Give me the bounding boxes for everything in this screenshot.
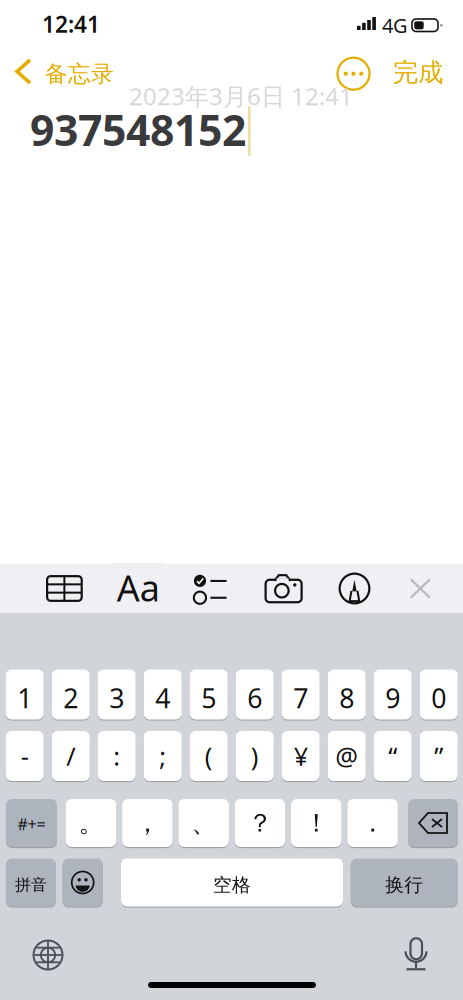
staticText: 2 — [63, 680, 78, 716]
button[interactable]: 4 — [144, 669, 182, 719]
button[interactable]: ， — [122, 799, 173, 847]
staticText: / — [66, 739, 75, 773]
staticText: 12:41 — [42, 9, 100, 39]
staticText: Aa — [117, 564, 160, 611]
staticText: 。 — [78, 807, 103, 838]
button[interactable]: Text formatting — [112, 563, 164, 612]
button[interactable]: Markup — [328, 564, 380, 613]
button[interactable]: Dictation — [394, 932, 438, 976]
staticText: 937548152 — [30, 101, 246, 158]
button[interactable]: 3 — [98, 669, 136, 719]
staticText: ( — [205, 739, 213, 773]
button[interactable]: 9 — [374, 669, 412, 719]
button[interactable]: #+= — [6, 799, 57, 847]
button[interactable]: 、 — [178, 799, 229, 847]
button[interactable]: 5 — [190, 669, 228, 719]
button[interactable]: ！ — [291, 799, 341, 847]
button[interactable]: 换行 — [351, 858, 458, 906]
staticText: ” — [434, 739, 443, 773]
button[interactable]: 7 — [282, 669, 320, 719]
button[interactable]: : — [98, 731, 136, 781]
staticText: 4 — [155, 680, 170, 716]
staticText: 5 — [201, 680, 216, 716]
staticText: ？ — [247, 807, 272, 838]
staticText: 4G — [382, 12, 408, 39]
button[interactable]: ． — [347, 799, 398, 847]
button[interactable]: ) — [236, 731, 274, 781]
staticText: 完成 — [393, 57, 443, 88]
staticText: ！ — [304, 807, 329, 838]
button[interactable]: 0 — [420, 669, 458, 719]
staticText: 2023年3月6日 12:41 — [129, 80, 353, 112]
button[interactable]: Hide keyboard — [394, 564, 446, 613]
staticText: - — [21, 739, 29, 773]
staticText: @ — [335, 739, 358, 773]
button[interactable]: Emoji — [63, 858, 103, 906]
button[interactable]: Checklist — [184, 564, 236, 613]
staticText: 1 — [17, 680, 32, 716]
staticText: 拼音 — [15, 875, 47, 895]
button[interactable]: “ — [374, 731, 412, 781]
button[interactable]: ¥ — [282, 731, 320, 781]
button[interactable]: 6 — [236, 669, 274, 719]
staticText: #+= — [17, 813, 45, 835]
staticText: 、 — [191, 807, 216, 838]
button[interactable]: 1 — [6, 669, 44, 719]
button[interactable]: - — [6, 731, 44, 781]
staticText: 8 — [339, 680, 354, 716]
staticText: ; — [159, 739, 166, 773]
button[interactable]: Delete — [408, 799, 458, 847]
button[interactable]: ; — [144, 731, 182, 781]
staticText: 6 — [247, 680, 262, 716]
staticText: 7 — [293, 680, 308, 716]
staticText: ． — [360, 807, 385, 838]
button[interactable]: ( — [190, 731, 228, 781]
staticText: ¥ — [294, 739, 308, 773]
staticText: 空格 — [213, 873, 251, 896]
staticText: 备忘录 — [45, 60, 114, 88]
staticText: 3 — [109, 680, 124, 716]
button[interactable]: 8 — [328, 669, 366, 719]
button[interactable]: 空格 — [121, 858, 343, 906]
button[interactable]: 完成 — [380, 50, 456, 94]
staticText: ) — [251, 739, 259, 773]
button[interactable]: / — [52, 731, 90, 781]
button[interactable]: Camera — [258, 564, 310, 613]
staticText: 0 — [431, 680, 446, 716]
button[interactable]: More — [331, 52, 375, 96]
button[interactable]: Table — [38, 564, 90, 613]
staticText: 换行 — [385, 873, 423, 896]
staticText: “ — [388, 739, 397, 773]
button[interactable]: ” — [420, 731, 458, 781]
button[interactable]: 拼音 — [6, 858, 56, 906]
staticText: 9 — [385, 680, 400, 716]
staticText: ， — [135, 807, 160, 838]
staticText: : — [113, 739, 120, 773]
button[interactable]: Next keyboard — [26, 933, 70, 977]
button[interactable]: ？ — [235, 799, 285, 847]
button[interactable]: 备忘录 — [0, 46, 130, 86]
button[interactable]: 2 — [52, 669, 90, 719]
button[interactable]: @ — [328, 731, 366, 781]
button[interactable]: 。 — [66, 799, 116, 847]
